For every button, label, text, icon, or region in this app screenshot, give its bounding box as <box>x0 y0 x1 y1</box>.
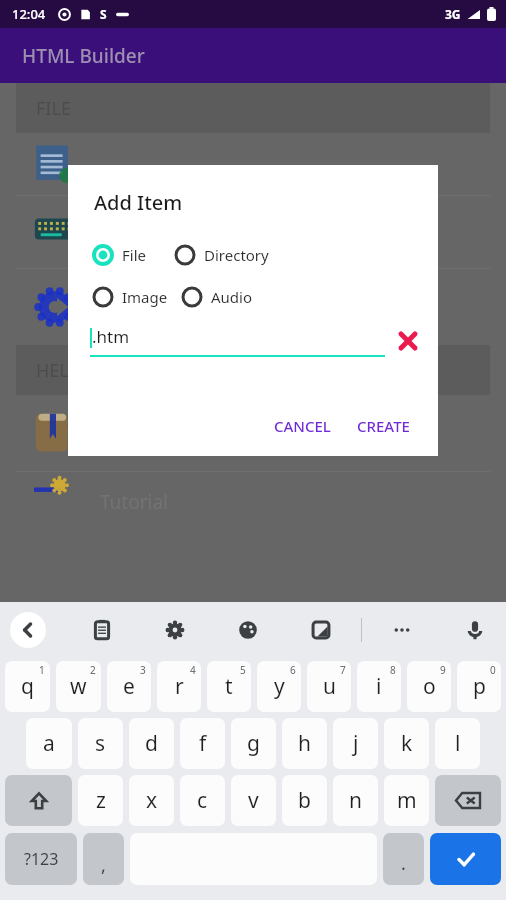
button[interactable]: Directory <box>175 245 269 265</box>
button[interactable]: e <box>107 661 151 712</box>
staticText: y <box>274 672 285 701</box>
staticText: s <box>95 729 106 758</box>
staticText: o <box>423 672 436 701</box>
button[interactable]: Tutorial <box>0 472 506 532</box>
staticText: g <box>247 729 260 758</box>
staticText: 7 <box>340 663 346 677</box>
staticText: File <box>122 245 146 265</box>
staticText: Directory <box>204 245 269 265</box>
staticText: w <box>70 672 87 701</box>
staticText: t <box>225 672 233 701</box>
button[interactable]: . <box>383 833 424 885</box>
staticText: 4 <box>190 663 196 677</box>
button[interactable]: Clipboard <box>85 613 119 647</box>
staticText: FILE <box>36 96 71 121</box>
staticText: 1 <box>39 663 45 677</box>
button[interactable]: Settings <box>158 613 192 647</box>
staticText: HTML Builder <box>22 43 145 69</box>
staticText: 5 <box>240 663 246 677</box>
button[interactable]: More <box>385 613 419 647</box>
staticText: S <box>100 6 107 22</box>
staticText: 6 <box>290 663 296 677</box>
button[interactable]: y <box>257 661 301 712</box>
button[interactable]: Clear <box>395 327 420 355</box>
button[interactable]: d <box>129 718 174 769</box>
staticText: , <box>101 853 106 878</box>
button[interactable]: Sticker <box>304 613 338 647</box>
button[interactable]: Reference <box>0 395 506 471</box>
button[interactable]: c <box>180 775 225 826</box>
staticText: r <box>175 672 184 701</box>
staticText: d <box>145 729 158 758</box>
staticText: e <box>123 672 135 701</box>
button[interactable]: p <box>457 661 501 712</box>
button[interactable]: q <box>5 661 50 712</box>
button[interactable] <box>0 269 506 345</box>
button[interactable]: File <box>93 245 146 265</box>
staticText: 12:04 <box>12 5 46 23</box>
staticText: p <box>473 672 486 701</box>
button[interactable]: Audio <box>182 287 253 307</box>
button[interactable]: g <box>231 718 276 769</box>
button[interactable] <box>0 196 506 268</box>
button[interactable]: v <box>231 775 276 826</box>
staticText: ?123 <box>24 848 59 870</box>
button[interactable]: o <box>407 661 451 712</box>
button[interactable]: CANCEL <box>266 410 339 442</box>
button[interactable]: Theme <box>231 613 265 647</box>
staticText: x <box>146 786 158 815</box>
button[interactable]: a <box>26 718 72 769</box>
button[interactable]: Enter <box>430 833 501 885</box>
button[interactable]: j <box>333 718 378 769</box>
staticText: Image <box>122 287 168 307</box>
staticText: f <box>199 729 207 758</box>
button[interactable]: i <box>357 661 401 712</box>
button[interactable]: Image <box>93 287 168 307</box>
button[interactable]: w <box>56 661 101 712</box>
button[interactable]: ?123 <box>5 833 77 885</box>
button[interactable]: t <box>207 661 251 712</box>
button[interactable]: m <box>384 775 429 826</box>
button[interactable]: Shift <box>5 775 72 826</box>
button[interactable]: s <box>78 718 123 769</box>
button[interactable]: r <box>157 661 201 712</box>
button[interactable]: Voice input <box>458 613 492 647</box>
staticText: n <box>349 786 362 815</box>
staticText: 9 <box>440 663 446 677</box>
button[interactable]: z <box>78 775 123 826</box>
staticText: 0 <box>490 663 496 677</box>
staticText: m <box>397 786 417 815</box>
staticText: Tutorial <box>100 489 169 515</box>
staticText: h <box>298 729 311 758</box>
staticText: l <box>455 729 461 758</box>
button[interactable]: , <box>83 833 124 885</box>
button[interactable]: f <box>180 718 225 769</box>
button[interactable]: x <box>129 775 174 826</box>
button[interactable]: CREATE <box>349 410 418 442</box>
button[interactable]: l <box>435 718 480 769</box>
button[interactable]: u <box>307 661 351 712</box>
staticText: . <box>401 851 406 876</box>
staticText: j <box>353 729 359 758</box>
staticText: 2 <box>90 663 96 677</box>
button[interactable]: n <box>333 775 378 826</box>
button[interactable]: b <box>282 775 327 826</box>
staticText: 3G <box>445 6 461 22</box>
button[interactable]: k <box>384 718 429 769</box>
staticText: c <box>197 786 208 815</box>
staticText: CREATE <box>357 416 410 436</box>
button[interactable]: Back <box>10 612 46 648</box>
staticText: k <box>401 729 413 758</box>
staticText: z <box>96 786 106 815</box>
staticText: a <box>43 729 55 758</box>
staticText: Audio <box>211 287 253 307</box>
staticText: b <box>298 786 311 815</box>
button[interactable] <box>0 133 506 195</box>
staticText: CANCEL <box>274 416 331 436</box>
staticText: q <box>21 672 34 701</box>
staticText: i <box>376 672 382 701</box>
button[interactable]: Backspace <box>435 775 501 826</box>
button[interactable]: h <box>282 718 327 769</box>
